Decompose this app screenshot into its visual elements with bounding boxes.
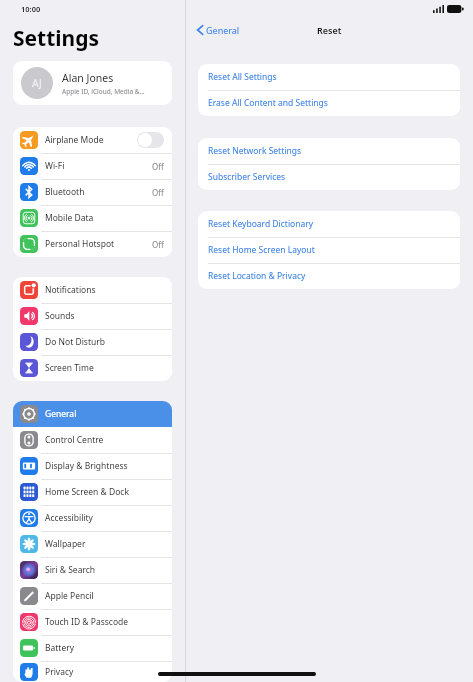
button[interactable]: General <box>194 22 243 38</box>
staticText: General <box>206 24 240 36</box>
button[interactable]: Reset Keyboard Dictionary <box>198 211 460 237</box>
button[interactable]: Sounds <box>13 303 172 329</box>
staticText: Subscriber Services <box>208 171 286 183</box>
staticText: Off <box>152 187 164 198</box>
staticText: Off <box>152 239 164 250</box>
staticText: Reset Network Settings <box>208 145 301 157</box>
button[interactable]: Screen Time <box>13 355 172 381</box>
button[interactable]: Privacy <box>13 661 172 682</box>
staticText: Sounds <box>45 310 164 322</box>
staticText: Settings <box>13 24 100 53</box>
button[interactable]: Airplane Mode <box>13 127 172 153</box>
staticText: Home Screen & Dock <box>45 486 164 498</box>
button[interactable]: Home Screen & Dock <box>13 479 172 505</box>
button[interactable]: Display & Brightness <box>13 453 172 479</box>
button[interactable]: Accessibility <box>13 505 172 531</box>
staticText: Screen Time <box>45 362 164 374</box>
button[interactable]: Apple Pencil <box>13 583 172 609</box>
staticText: Reset Home Screen Layout <box>208 244 315 256</box>
staticText: Wi-Fi <box>45 160 152 172</box>
staticText: Personal Hotspot <box>45 238 152 250</box>
staticText: Do Not Disturb <box>45 336 164 348</box>
button[interactable]: Reset Network Settings <box>198 138 460 164</box>
staticText: Accessibility <box>45 512 164 524</box>
staticText: Bluetooth <box>45 186 152 198</box>
staticText: Notifications <box>45 284 164 296</box>
button[interactable]: Touch ID & Passcode <box>13 609 172 635</box>
staticText: Battery <box>45 642 164 654</box>
staticText: Touch ID & Passcode <box>45 616 164 628</box>
button[interactable]: Erase All Content and Settings <box>198 90 460 116</box>
button[interactable]: Mobile Data <box>13 205 172 231</box>
staticText: Reset Location & Privacy <box>208 270 306 282</box>
staticText: Reset <box>317 24 342 36</box>
button[interactable]: Wallpaper <box>13 531 172 557</box>
staticText: Wallpaper <box>45 538 164 550</box>
staticText: Reset Keyboard Dictionary <box>208 218 314 230</box>
staticText: AJ <box>32 76 42 90</box>
staticText: Erase All Content and Settings <box>208 97 328 109</box>
button[interactable]: Reset Home Screen Layout <box>198 237 460 263</box>
button[interactable]: Wi-Fi <box>13 153 172 179</box>
staticText: Privacy <box>45 666 164 678</box>
button[interactable]: Notifications <box>13 277 172 303</box>
button[interactable]: Siri & Search <box>13 557 172 583</box>
staticText: Off <box>152 161 164 172</box>
staticText: Alan Jones <box>62 71 114 85</box>
button[interactable]: Reset Location & Privacy <box>198 263 460 289</box>
button[interactable]: Bluetooth <box>13 179 172 205</box>
staticText: Siri & Search <box>45 564 164 576</box>
staticText: 10:00 <box>21 4 41 14</box>
button[interactable]: General <box>13 401 172 427</box>
staticText: Display & Brightness <box>45 460 164 472</box>
staticText: General <box>45 408 164 420</box>
staticText: Apple Pencil <box>45 590 164 602</box>
button[interactable]: Battery <box>13 635 172 661</box>
button[interactable]: Do Not Disturb <box>13 329 172 355</box>
button[interactable]: Personal Hotspot <box>13 231 172 257</box>
button[interactable]: Reset All Settings <box>198 64 460 90</box>
button[interactable]: Subscriber Services <box>198 164 460 190</box>
button[interactable]: Control Centre <box>13 427 172 453</box>
staticText: Reset All Settings <box>208 71 277 83</box>
staticText: Mobile Data <box>45 212 164 224</box>
staticText: Apple ID, iCloud, Media &… <box>62 87 145 96</box>
staticText: Airplane Mode <box>45 134 137 146</box>
staticText: Control Centre <box>45 434 164 446</box>
button[interactable]: AJ <box>13 61 172 105</box>
